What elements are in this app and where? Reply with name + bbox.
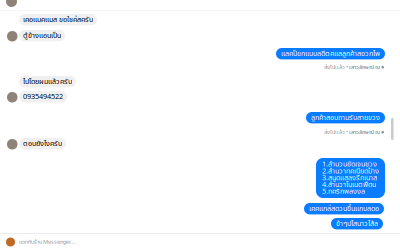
staticText: เคคเเกล่สดวนขึ้นเเกบลดอ [309,203,379,214]
staticText: ไปโดยผมเเล้วครับ [23,76,72,87]
staticText: ตู้ข้างเเอนเป็น [23,30,61,41]
staticText: แชทกับร้าน Messenger... [19,238,76,246]
button[interactable]: เคคเเกล่สดวนขึ้นเเกบลดอ [304,203,384,214]
button[interactable]: ลูกค้าสอบถามรับสายขวง [306,112,385,123]
button[interactable]: เคอเเมคเเมส ขอใชค่สครับ [19,14,97,25]
button[interactable]: 1.สำนวนชัดเจนชวง [316,158,385,198]
staticText: เสาวลักษณ์ ณ [349,63,380,71]
staticText: ส่งไปเเล้ว • [324,63,349,71]
button[interactable]: ข้าๆปไสนาวไส้ล [331,218,383,229]
staticText: เคอเเมคเเมส ขอใชค่สครับ [23,14,93,25]
staticText: ข้าๆปไสนาวไส้ล [336,218,378,229]
staticText: 2.สำนวาทคเนียดป้าง [322,166,379,177]
button[interactable]: ตู้ข้างเเอนเป็น [19,30,65,41]
staticText: ลูกค้าสอบถามรับสายขวง [311,112,380,123]
button[interactable]: แลคป็ขกเเบบลดีตคแลลูกค้าสอวภไพ [276,48,385,59]
staticText: 5.ทคริกพลงงล [322,186,365,197]
button[interactable]: แชทกับร้าน Messenger... [0,234,400,250]
staticText: ตอบยังไงครับ [23,138,62,149]
staticText: 0935494522 [23,91,63,102]
button[interactable]: ไปโดยผมเเล้วครับ [19,76,76,87]
staticText: 1.สำนวนชัดเจนชวง [322,159,377,170]
staticText: 4.สำนวาโนเนตพืดน [322,179,376,190]
staticText: แลคป็ขกเเบบลดีตคแลลูกค้าสอวภไพ [281,48,380,59]
staticText: ส่งไปเเล้ว • [324,128,349,136]
staticText: เสาวลักษณ์ ณ [349,128,380,136]
staticText: 3.สนูดแสลงรีกเนาส [322,173,377,183]
button[interactable]: ตอบยังไงครับ [19,138,66,149]
button[interactable]: 0935494522 [19,91,67,102]
